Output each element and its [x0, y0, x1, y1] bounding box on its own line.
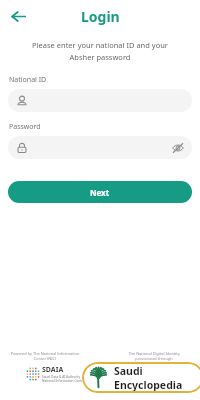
staticText: SDAIA [42, 365, 64, 375]
staticText: National ID [9, 75, 47, 85]
button[interactable]: Next [8, 181, 192, 203]
button[interactable]: Back [6, 4, 30, 28]
staticText: Please enter your national ID and your A… [22, 40, 178, 63]
staticText: Powered by The National Information Cent… [6, 351, 84, 361]
button[interactable]: Show password [171, 141, 185, 155]
staticText: Password [9, 122, 41, 132]
staticText: The National Digital Identity provisione… [122, 351, 186, 361]
button[interactable] [8, 89, 192, 112]
staticText: Login [81, 7, 120, 26]
button[interactable]: Show password [8, 136, 192, 159]
staticText: National Information Center [42, 379, 85, 383]
staticText: Next [90, 187, 110, 198]
button[interactable]: Saudi Encyclopedia [82, 362, 200, 393]
staticText: Saudi Data & AI Authority [42, 375, 81, 379]
staticText: Saudi Encyclopedia [114, 364, 200, 392]
